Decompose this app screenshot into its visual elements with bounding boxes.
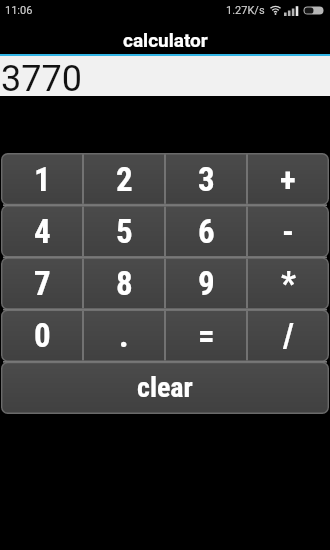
staticText: 11:06: [5, 4, 33, 17]
staticText: 1.27K/s: [226, 4, 265, 17]
staticText: 3: [198, 160, 215, 199]
button[interactable]: 9: [165, 257, 247, 309]
button[interactable]: 8: [83, 257, 165, 309]
staticText: 7: [34, 264, 51, 303]
button[interactable]: /: [247, 309, 329, 361]
button[interactable]: clear: [1, 361, 329, 413]
button[interactable]: 6: [165, 205, 247, 257]
staticText: 0: [34, 316, 51, 355]
button[interactable]: 4: [1, 205, 83, 257]
staticText: 5: [116, 212, 133, 251]
staticText: .: [119, 316, 129, 355]
staticText: /: [283, 316, 294, 355]
button[interactable]: 1: [1, 153, 83, 205]
staticText: -: [282, 212, 294, 251]
staticText: 4: [34, 212, 51, 251]
staticText: *: [281, 264, 296, 303]
staticText: 6: [198, 212, 215, 251]
staticText: +: [280, 160, 296, 199]
button[interactable]: =: [165, 309, 247, 361]
button[interactable]: 0: [1, 309, 83, 361]
button[interactable]: .: [83, 309, 165, 361]
button[interactable]: 2: [83, 153, 165, 205]
staticText: 9: [198, 264, 215, 303]
button[interactable]: 7: [1, 257, 83, 309]
staticText: 3770: [1, 58, 82, 96]
staticText: calculator: [123, 29, 208, 51]
button[interactable]: +: [247, 153, 329, 205]
button[interactable]: -: [247, 205, 329, 257]
staticText: 1: [34, 160, 51, 199]
button[interactable]: 3: [165, 153, 247, 205]
staticText: clear: [137, 371, 193, 404]
staticText: 8: [116, 264, 133, 303]
button[interactable]: *: [247, 257, 329, 309]
staticText: 2: [116, 160, 133, 199]
staticText: =: [198, 316, 215, 355]
button[interactable]: 5: [83, 205, 165, 257]
